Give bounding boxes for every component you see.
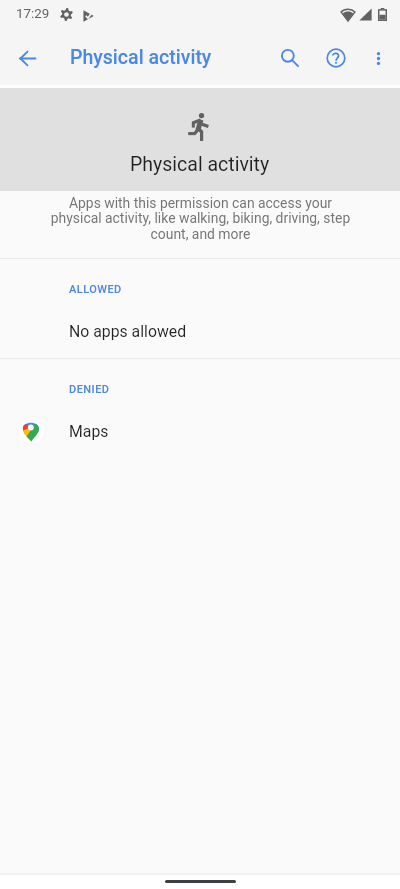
staticText: No apps allowed	[69, 322, 187, 341]
button[interactable]: More options	[358, 38, 398, 78]
staticText: 17:29	[16, 6, 50, 22]
staticText: Physical activity	[130, 153, 270, 176]
button[interactable]: Help	[316, 38, 356, 78]
button[interactable]: No apps allowed	[0, 301, 400, 358]
staticText: ALLOWED	[69, 283, 122, 296]
staticText: Maps	[69, 422, 109, 441]
staticText: Physical activity	[70, 46, 212, 69]
button[interactable]: Maps	[0, 401, 400, 458]
staticText: DENIED	[69, 383, 110, 396]
staticText: Apps with this permission can access you…	[48, 195, 353, 243]
button[interactable]: Navigate up	[7, 38, 47, 78]
button[interactable]: Search	[270, 38, 310, 78]
